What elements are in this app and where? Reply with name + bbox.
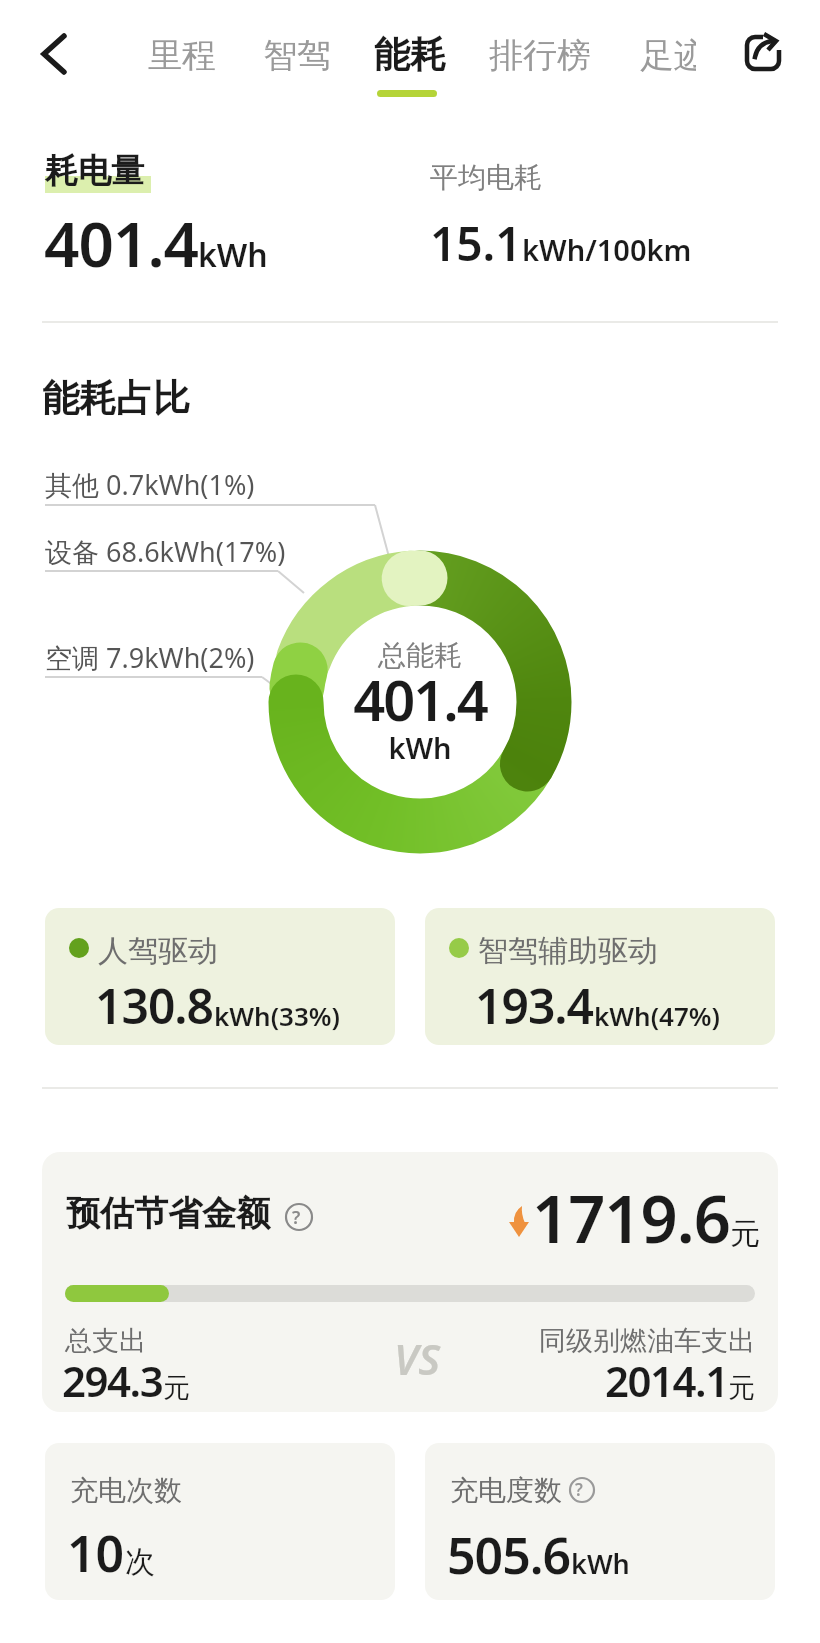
staticText: VS [394,1330,441,1387]
staticText: 401.4 [44,201,198,285]
staticText: 能耗占比 [42,375,190,422]
button[interactable]: 预估节省金额 [42,1152,778,1412]
staticText: 耗电量 [45,150,144,192]
staticText: kWh [388,728,452,767]
staticText: kWh [571,1545,630,1582]
staticText: kWh/100km [522,230,692,269]
staticText: 2014.1 [605,1352,728,1409]
button[interactable] [738,26,790,78]
staticText: 15.1 [430,212,522,275]
staticText: ? [292,1205,301,1230]
staticText: 充电次数 [70,1473,182,1508]
staticText: 设备 68.6kWh(17%) [45,533,286,570]
staticText: 294.3 [62,1352,163,1409]
staticText: 排行榜 [489,34,591,77]
staticText: 里程 [148,34,216,77]
staticText: 次 [125,1543,155,1581]
staticText: 10 [67,1519,125,1587]
staticText: 1719.6 [532,1174,730,1263]
staticText: kWh [198,233,268,277]
staticText: 能耗 [374,32,446,77]
button[interactable]: 能耗 [366,26,438,90]
button[interactable]: 智驾辅助驱动 [425,908,775,1045]
button[interactable]: 足迹 [636,26,696,82]
staticText: 总能耗 [378,638,462,673]
staticText: 元 [730,1215,760,1253]
staticText: 智驾 [263,34,331,77]
button[interactable]: 里程 [140,26,208,82]
staticText: 401.4 [353,661,487,737]
staticText: 人驾驱动 [98,932,218,970]
button[interactable]: 充电次数 [45,1443,395,1600]
staticText: 130.8 [95,973,214,1038]
staticText: kWh(47%) [594,998,720,1033]
button[interactable] [30,28,82,80]
staticText: 同级别燃油车支出 [539,1324,755,1358]
staticText: 智驾辅助驱动 [478,932,658,970]
button[interactable]: 人驾驱动 [45,908,395,1045]
staticText: 充电度数 [450,1473,562,1508]
staticText: ? [575,1478,583,1501]
staticText: 空调 7.9kWh(2%) [45,639,255,676]
staticText: 预估节省金额 [66,1192,270,1235]
staticText: kWh(33%) [214,998,340,1033]
staticText: 元 [728,1371,755,1405]
staticText: 505.6 [447,1521,571,1589]
staticText: 平均电耗 [430,160,542,195]
button[interactable]: 智驾 [255,26,323,82]
staticText: 其他 0.7kWh(1%) [45,466,255,503]
staticText: 元 [163,1371,190,1405]
button[interactable]: 排行榜 [481,26,583,82]
staticText: 足迹 [640,34,696,77]
staticText: 总支出 [65,1324,146,1358]
staticText: 193.4 [475,973,594,1038]
button[interactable]: 充电度数 [425,1443,775,1600]
